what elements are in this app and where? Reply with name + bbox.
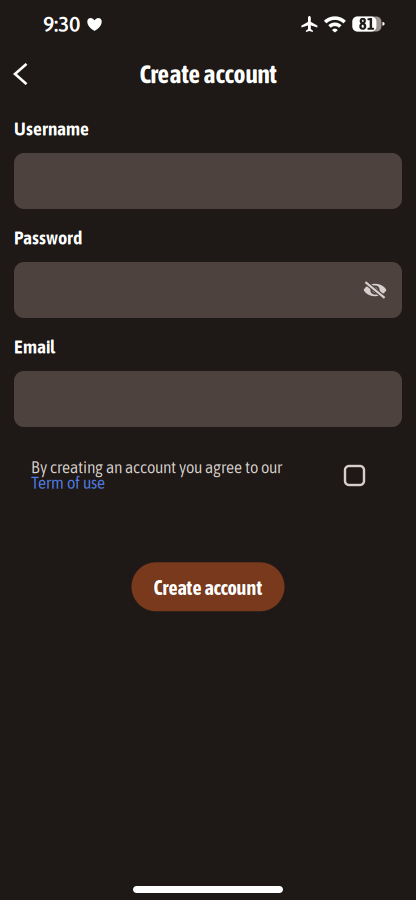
staticText: Create account xyxy=(139,59,276,88)
staticText: Term of use xyxy=(31,474,105,492)
staticText: 81 xyxy=(359,15,375,33)
button[interactable]: Create account xyxy=(131,562,284,611)
button[interactable]: Back xyxy=(3,56,39,92)
button[interactable]: Show password xyxy=(355,268,395,312)
staticText: By creating an account you agree to our xyxy=(31,458,282,477)
staticText: 9:30 xyxy=(43,12,80,36)
staticText: Create account xyxy=(153,576,262,599)
staticText: Password xyxy=(14,228,82,248)
button[interactable]: Term of use xyxy=(31,474,105,492)
button[interactable]: Agree to terms xyxy=(337,458,372,493)
staticText: Username xyxy=(14,119,89,139)
staticText: Email xyxy=(14,337,55,357)
